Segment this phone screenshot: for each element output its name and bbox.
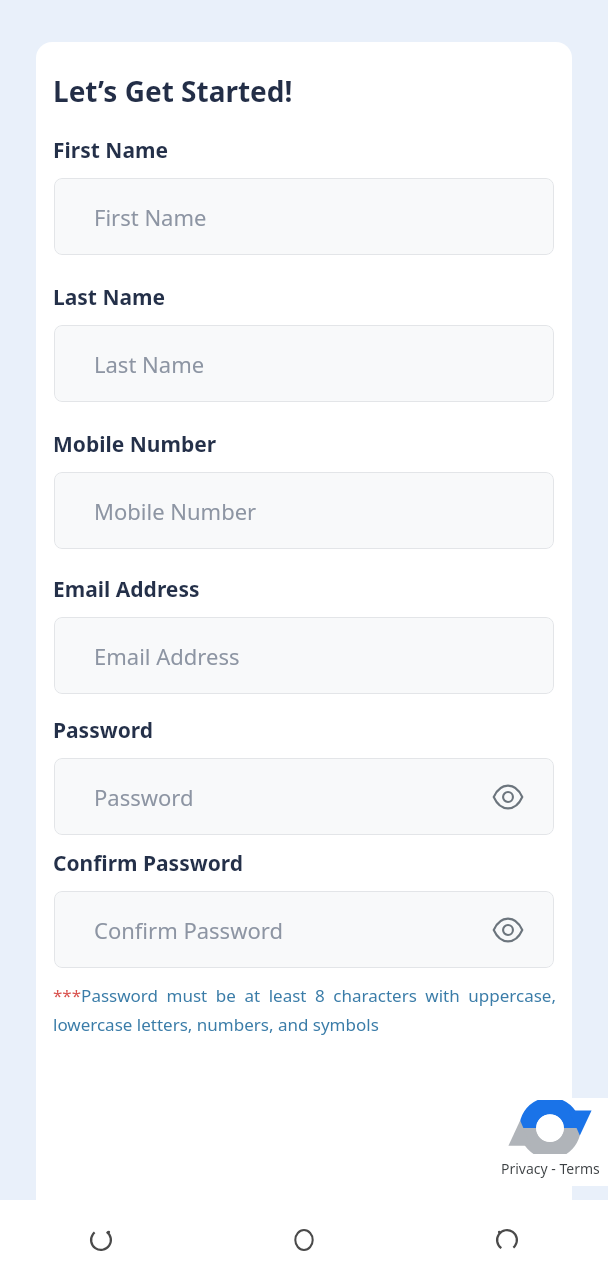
staticText: Confirm Password — [53, 849, 244, 878]
staticText: ***Password must be at least 8 character… — [53, 984, 556, 1036]
button[interactable]: Show password — [488, 910, 528, 950]
staticText: First Name — [94, 202, 207, 232]
button[interactable]: Last Name — [54, 325, 554, 402]
staticText: Email Address — [53, 575, 200, 604]
staticText: Last Name — [53, 283, 166, 312]
button[interactable]: Mobile Number — [54, 472, 554, 549]
staticText: Confirm Password — [94, 915, 283, 945]
staticText: Last Name — [94, 349, 205, 379]
button[interactable]: Back — [0, 1200, 202, 1280]
button[interactable]: Recents — [405, 1200, 608, 1280]
staticText: First Name — [53, 136, 168, 165]
staticText: Privacy - Terms — [501, 1159, 600, 1178]
button[interactable]: Confirm Password — [54, 891, 554, 968]
button[interactable]: Email Address — [54, 617, 554, 694]
button[interactable]: Home — [202, 1200, 405, 1280]
staticText: Let’s Get Started! — [53, 72, 293, 110]
button[interactable]: reCAPTCHA Privacy and Terms — [488, 1098, 608, 1186]
staticText: Password — [53, 716, 154, 745]
button[interactable]: Show password — [488, 777, 528, 817]
staticText: Email Address — [94, 641, 240, 671]
button[interactable]: First Name — [54, 178, 554, 255]
staticText: Mobile Number — [94, 496, 257, 526]
staticText: Password — [94, 782, 194, 812]
staticText: Mobile Number — [53, 430, 217, 459]
button[interactable]: Password — [54, 758, 554, 835]
